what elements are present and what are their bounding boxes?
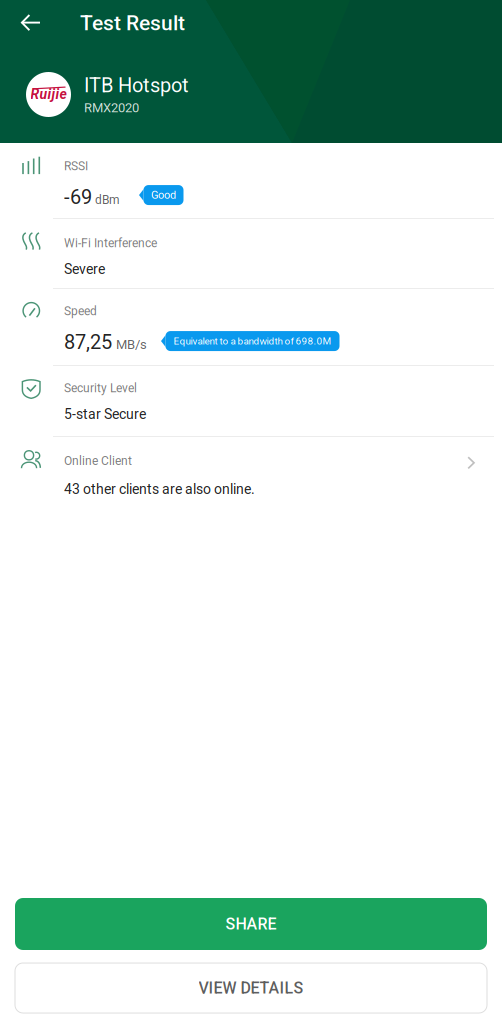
staticText: Online Client: [64, 454, 132, 468]
staticText: Speed: [64, 304, 97, 318]
staticText: Good: [151, 189, 176, 201]
staticText: Ruijie: [30, 86, 66, 102]
staticText: 87,25: [64, 330, 112, 354]
staticText: 5-star Secure: [64, 406, 146, 422]
staticText: Wi-Fi Interference: [64, 236, 157, 250]
staticText: MB/s: [116, 337, 147, 352]
staticText: RMX2020: [84, 100, 139, 115]
staticText: RSSI: [64, 159, 88, 173]
staticText: VIEW DETAILS: [198, 979, 303, 997]
button[interactable]: Online Client: [0, 437, 502, 507]
button[interactable]: VIEW DETAILS: [15, 963, 487, 1013]
staticText: Test Result: [80, 11, 185, 35]
staticText: SHARE: [225, 915, 276, 933]
staticText: -69: [64, 185, 92, 209]
staticText: ITB Hotspot: [84, 74, 189, 97]
button[interactable]: SHARE: [15, 898, 487, 950]
staticText: Severe: [64, 261, 105, 277]
button[interactable]: Back: [0, 0, 80, 46]
staticText: dBm: [95, 193, 120, 207]
staticText: 43 other clients are also online.: [64, 481, 255, 497]
staticText: Equivalent to a bandwidth of 698.0M: [173, 335, 331, 347]
staticText: Security Level: [64, 381, 137, 395]
